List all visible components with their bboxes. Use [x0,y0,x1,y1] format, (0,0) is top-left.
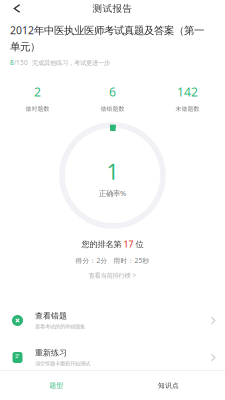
staticText: 17 [123,238,133,250]
staticText: /150 完成其他练习，考试更进一步 [14,58,110,67]
staticText: 查看当前排行榜 > [88,271,136,280]
staticText: 做对题数 [25,105,49,112]
staticText: 142 [177,83,198,100]
staticText: 清空答题卡重新开始测试 [35,360,90,367]
staticText: 知识点 [158,381,179,390]
button[interactable]: 题型 [0,371,112,399]
staticText: 测试报告 [92,2,132,14]
staticText: 正确率% [99,188,126,198]
button[interactable]: Back [4,0,30,18]
staticText: 得分：2分 用时：25秒 [75,256,149,265]
staticText: 重新练习 [35,348,67,358]
staticText: 您的排名第 [81,239,123,249]
staticText: 查看考试的所有错题集 [35,323,85,330]
staticText: 8 [10,58,14,67]
button[interactable]: 知识点 [112,371,224,399]
staticText: 位 [133,239,143,249]
staticText: 1 [106,157,118,186]
staticText: 2 [34,83,41,100]
staticText: 6 [109,83,116,100]
button[interactable]: 查看错题 [0,302,225,339]
staticText: 查看错题 [35,311,67,321]
staticText: 2012年中医执业医师考试真题及答案（第一 [10,23,204,37]
staticText: 未做题数 [175,105,199,112]
staticText: 题型 [49,381,63,390]
button[interactable]: 重新练习 [0,339,225,376]
staticText: 单元） [10,40,40,53]
button[interactable]: 查看当前排行榜 > [88,271,136,280]
staticText: 做错题数 [100,105,124,112]
